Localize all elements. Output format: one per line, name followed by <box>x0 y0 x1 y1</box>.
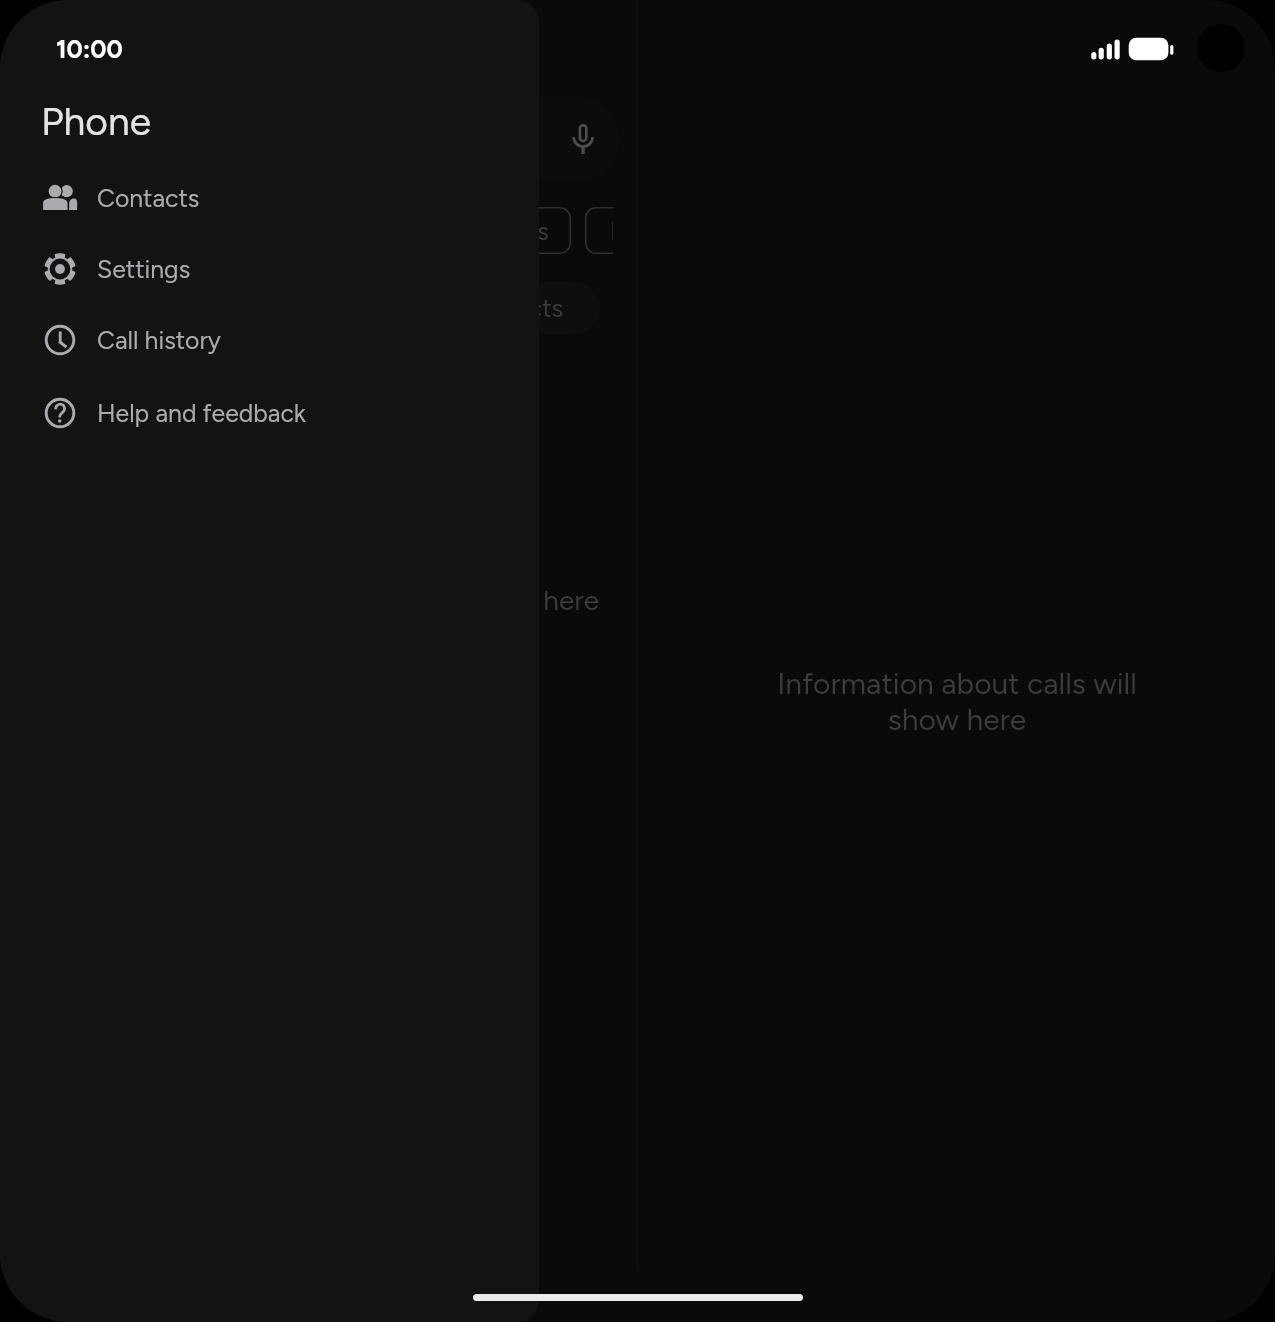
other: Voice search <box>572 124 595 155</box>
button[interactable]: Settings <box>0 233 539 305</box>
staticText: 10:00 <box>56 34 123 64</box>
staticText: Help and feedback <box>97 398 306 428</box>
button[interactable]: Contacts <box>0 162 539 234</box>
staticText: Phone <box>41 98 152 145</box>
button[interactable]: Search contacts <box>18 96 620 180</box>
button[interactable]: Contacts <box>423 282 600 334</box>
staticText: Your contacts and recent calls will show… <box>0 583 637 617</box>
staticText: Settings <box>97 254 191 284</box>
staticText: Search contacts <box>84 122 282 154</box>
staticText: Contacts <box>97 183 200 213</box>
button[interactable]: Other contacts <box>356 207 571 254</box>
staticText: Missed <box>610 216 613 246</box>
staticText: Contacts <box>460 293 564 323</box>
staticText: Information about calls will show here <box>759 665 1155 737</box>
button[interactable]: Favourites <box>18 207 180 254</box>
staticText: Other contacts <box>379 216 549 246</box>
button[interactable]: Call history <box>0 304 539 376</box>
staticText: Call history <box>97 325 221 355</box>
button[interactable]: Missed <box>585 207 613 254</box>
button[interactable]: Help and feedback <box>0 377 539 449</box>
